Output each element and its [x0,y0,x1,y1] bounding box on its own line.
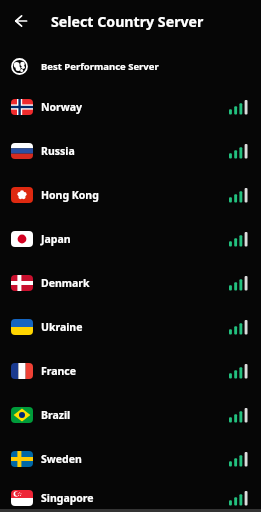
button[interactable]: Norway [0,87,261,127]
staticText: France [41,364,77,378]
button[interactable]: Hong Kong [0,175,261,215]
button[interactable]: France [0,351,261,391]
staticText: Singapore [41,491,94,505]
button[interactable]: Sweden [0,439,261,479]
staticText: Japan [41,232,71,246]
button[interactable]: Brazil [0,395,261,435]
staticText: Brazil [41,408,71,422]
staticText: Best Performance Server [41,60,159,73]
button[interactable]: Japan [0,219,261,259]
staticText: Select Country Server [51,12,204,31]
button[interactable]: Russia [0,131,261,171]
button[interactable]: Denmark [0,263,261,303]
button[interactable]: Singapore [0,483,261,512]
button[interactable]: Best Performance Server [0,48,261,84]
staticText: Ukraine [41,320,83,334]
staticText: Norway [41,100,83,114]
staticText: Russia [41,144,75,158]
staticText: Hong Kong [41,188,99,202]
staticText: Sweden [41,452,82,466]
button[interactable]: Ukraine [0,307,261,347]
staticText: Denmark [41,276,90,290]
button[interactable] [11,11,31,31]
